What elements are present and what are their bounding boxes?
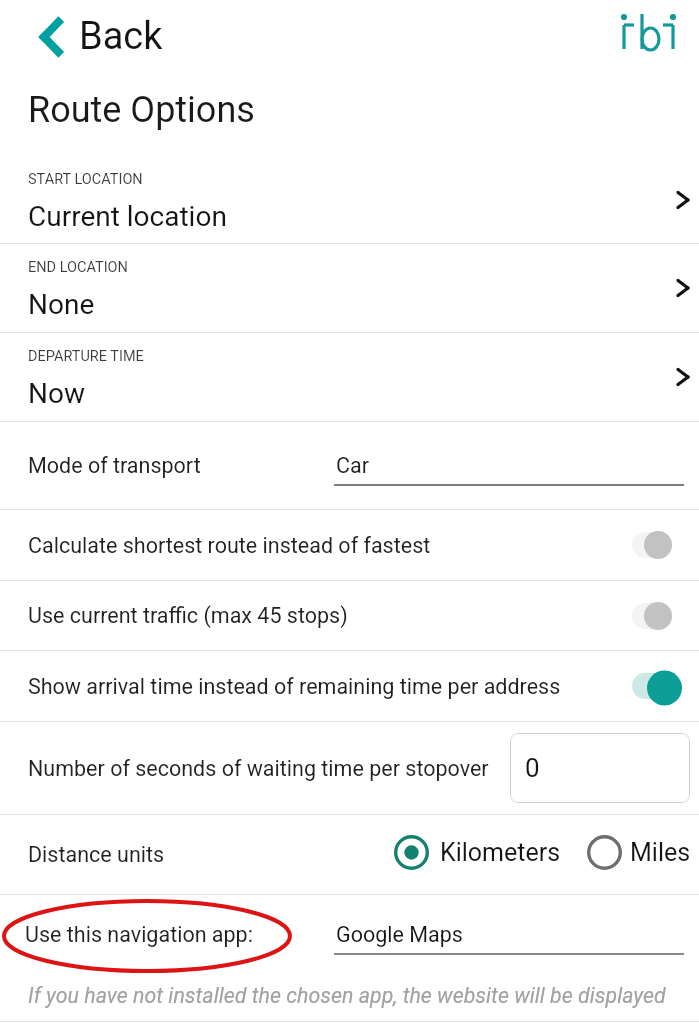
staticText: Calculate shortest route instead of fast… [28, 533, 632, 558]
button[interactable]: Use current traffic (max 45 stops) [0, 581, 699, 650]
staticText: Show arrival time instead of remaining t… [28, 674, 632, 699]
button[interactable]: Back [32, 8, 171, 65]
staticText: DEPARTURE TIME [28, 348, 144, 365]
button[interactable]: Mode of transport [0, 422, 699, 509]
staticText: Current location [28, 200, 227, 233]
staticText: Car [336, 453, 369, 478]
staticText: END LOCATION [28, 259, 128, 276]
staticText: Use current traffic (max 45 stops) [28, 603, 632, 628]
button[interactable]: Use this navigation app: [0, 895, 699, 963]
staticText: Distance units [28, 842, 165, 867]
other: rbi logo [621, 8, 679, 54]
staticText: None [28, 288, 95, 321]
staticText: Use this navigation app: [25, 922, 253, 947]
button[interactable]: Kilometers [389, 830, 565, 875]
staticText: Route Options [28, 89, 255, 131]
button[interactable]: Show arrival time instead of remaining t… [0, 651, 699, 721]
staticText: Miles [630, 838, 691, 867]
staticText: Number of seconds of waiting time per st… [28, 756, 489, 781]
button[interactable]: 0 [510, 733, 690, 803]
button[interactable]: Miles [582, 830, 695, 875]
staticText: Mode of transport [28, 453, 201, 478]
staticText: If you have not installed the chosen app… [28, 983, 666, 1008]
button[interactable]: DEPARTURE TIME [0, 333, 699, 421]
staticText: Back [79, 14, 163, 59]
staticText: 0 [525, 753, 540, 783]
staticText: Google Maps [336, 922, 463, 947]
staticText: START LOCATION [28, 171, 143, 188]
staticText: Now [28, 377, 85, 410]
other: Back [40, 15, 63, 59]
button[interactable]: Calculate shortest route instead of fast… [0, 510, 699, 580]
button[interactable]: START LOCATION [0, 145, 699, 243]
button[interactable]: END LOCATION [0, 244, 699, 332]
staticText: Kilometers [440, 838, 561, 867]
